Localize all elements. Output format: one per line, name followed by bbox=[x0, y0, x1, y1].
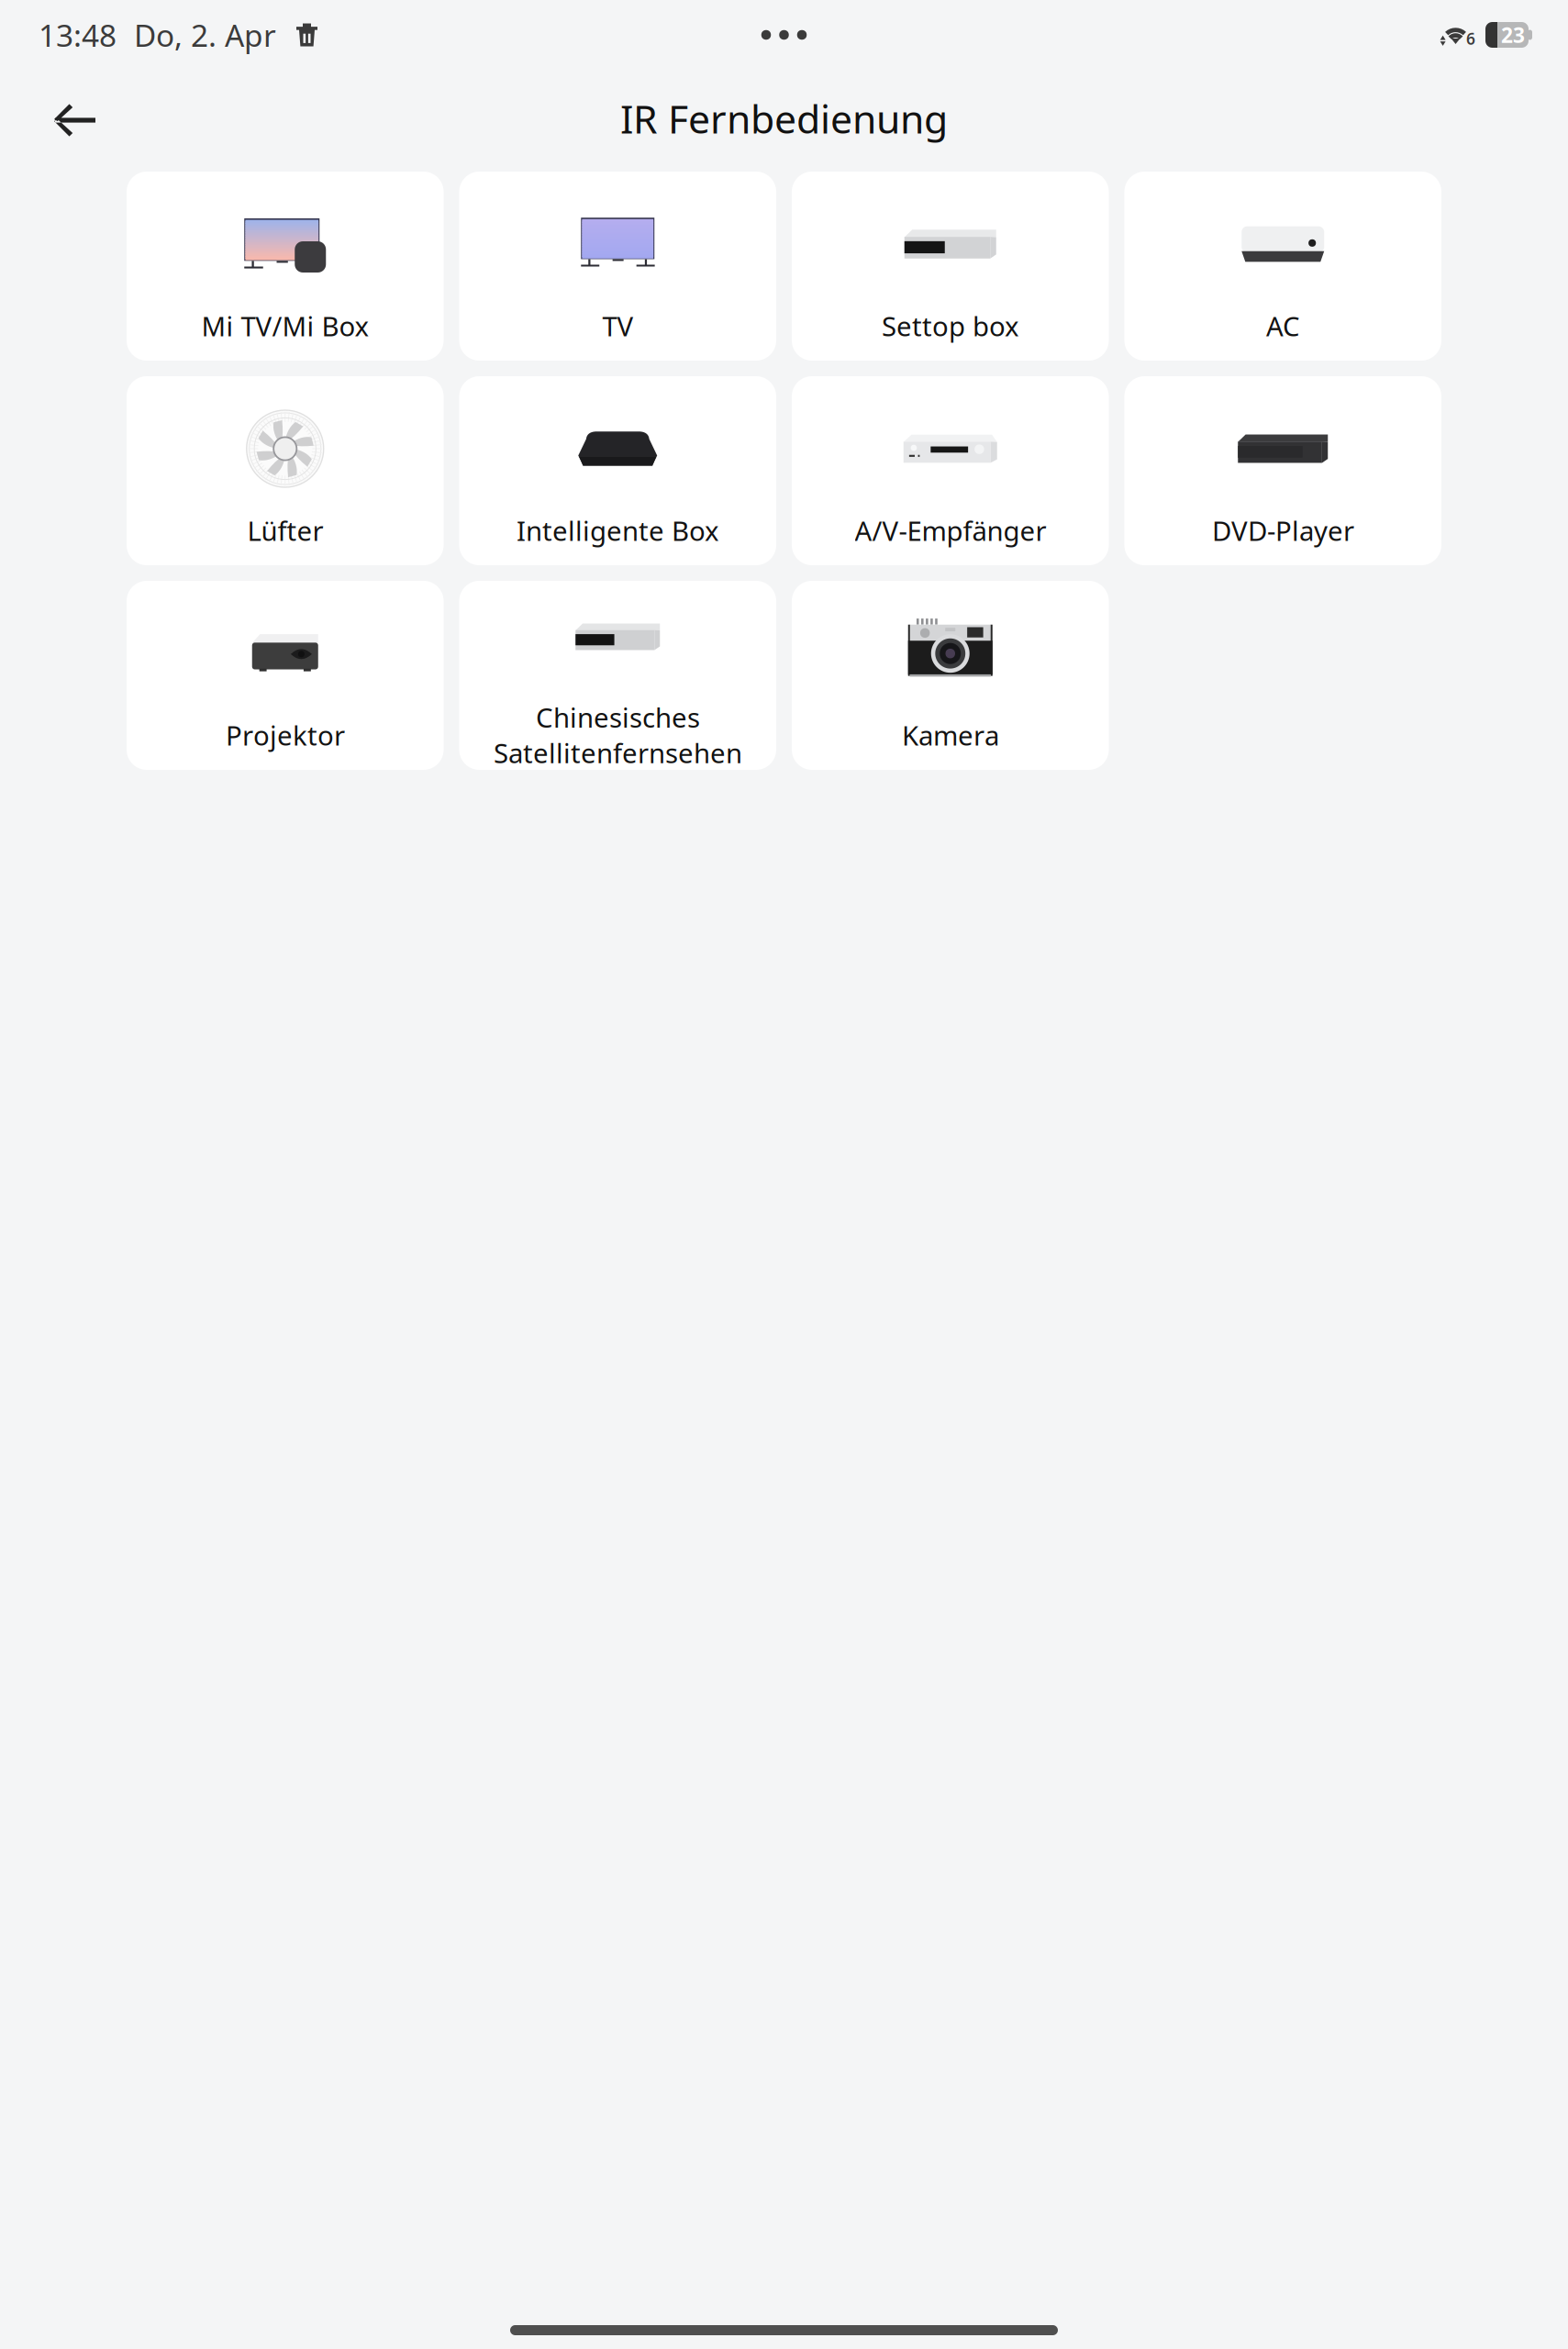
staticText: AC bbox=[1266, 308, 1300, 344]
staticText: TV bbox=[602, 308, 633, 344]
button[interactable]: Kamera bbox=[792, 581, 1109, 770]
button[interactable]: Intelligente Box bbox=[459, 376, 776, 565]
button[interactable]: Back bbox=[27, 79, 124, 161]
staticText: 23 bbox=[1501, 21, 1525, 49]
staticText: DVD-Player bbox=[1212, 512, 1354, 548]
button[interactable]: TV bbox=[459, 172, 776, 361]
staticText: Lüfter bbox=[247, 512, 323, 548]
button[interactable]: Mi TV/Mi Box bbox=[127, 172, 444, 361]
staticText: Mi TV/Mi Box bbox=[201, 308, 369, 344]
staticText: Intelligente Box bbox=[516, 512, 719, 548]
button[interactable]: Projektor bbox=[127, 581, 444, 770]
staticText: 13:48 bbox=[39, 15, 117, 55]
button[interactable]: A/V-Empfänger bbox=[792, 376, 1109, 565]
button[interactable]: Lüfter bbox=[127, 376, 444, 565]
button[interactable]: Settop box bbox=[792, 172, 1109, 361]
staticText: 6 bbox=[1466, 28, 1475, 49]
staticText: Kamera bbox=[902, 717, 999, 753]
staticText: Settop box bbox=[882, 308, 1019, 344]
button[interactable]: DVD-Player bbox=[1124, 376, 1441, 565]
staticText: Do, 2. Apr bbox=[134, 15, 276, 55]
staticText: IR Fernbedienung bbox=[620, 92, 948, 144]
staticText: Chinesisches Satellitenfernsehen bbox=[493, 699, 742, 771]
staticText: A/V-Empfänger bbox=[854, 512, 1046, 548]
staticText: Projektor bbox=[226, 717, 345, 753]
button[interactable]: AC bbox=[1124, 172, 1441, 361]
button[interactable]: Chinesisches Satellitenfernsehen bbox=[459, 581, 776, 770]
